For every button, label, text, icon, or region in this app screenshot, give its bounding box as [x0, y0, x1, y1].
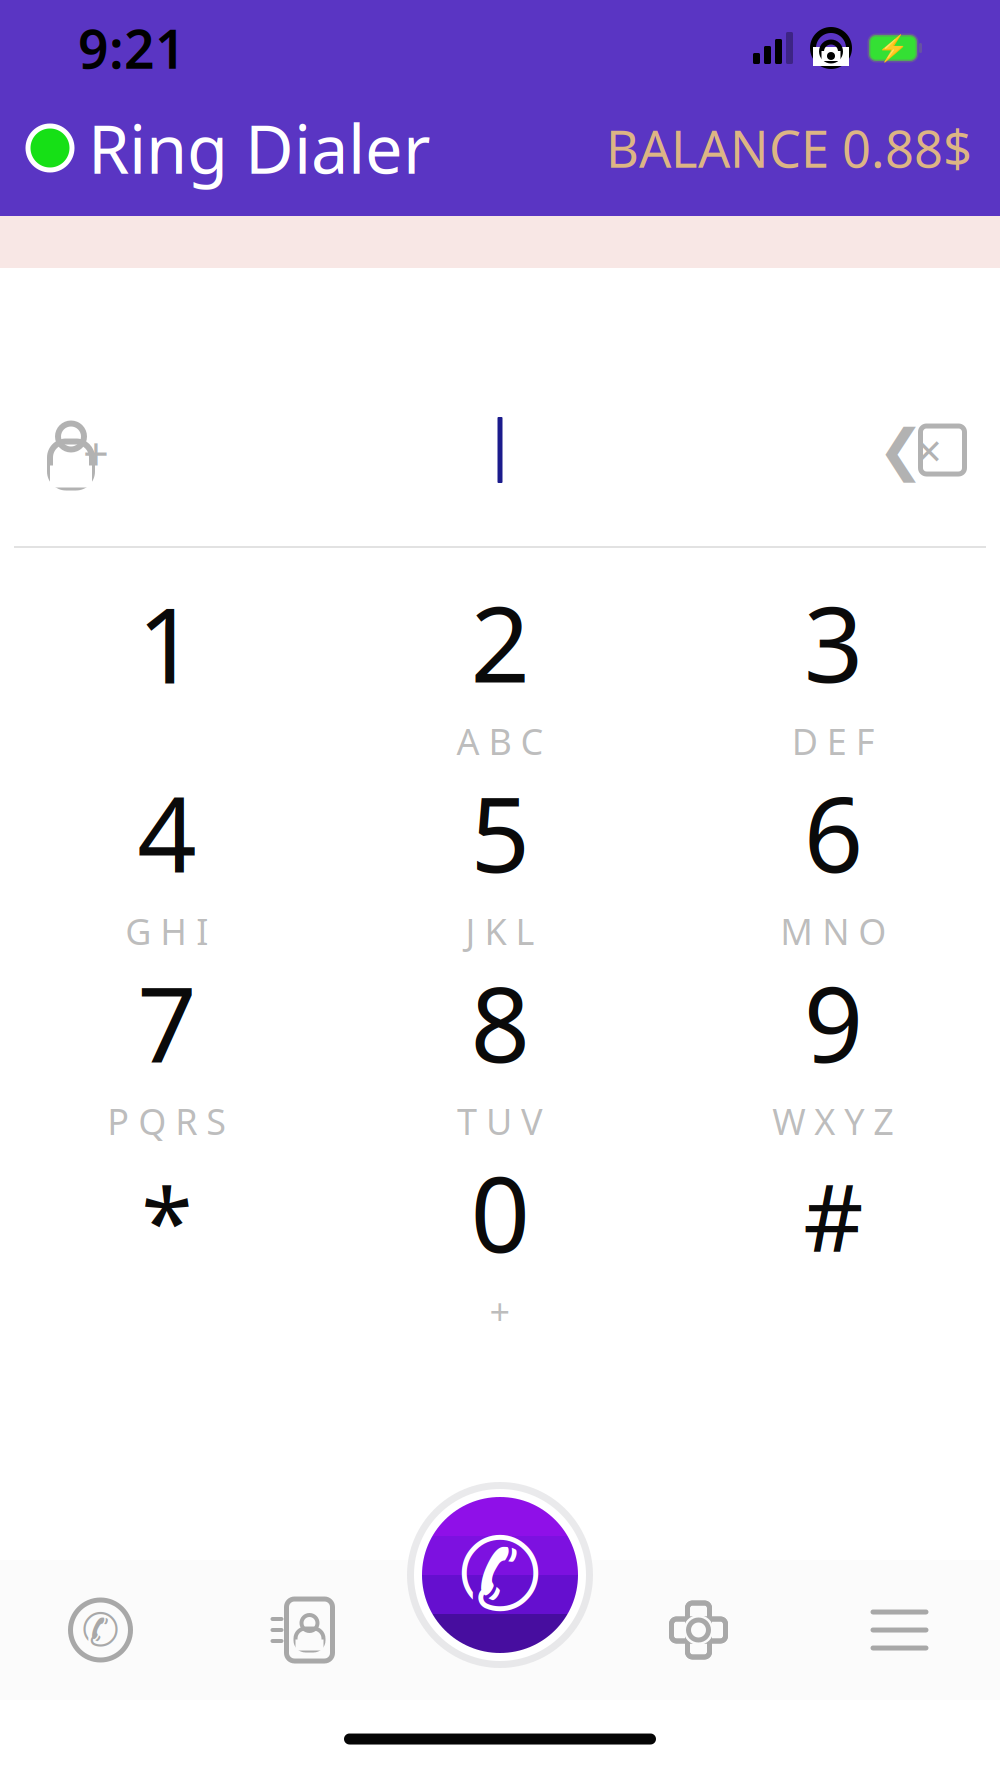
staticText: D E F: [792, 717, 875, 765]
staticText: *: [141, 1158, 192, 1282]
staticText: 3: [804, 573, 863, 711]
button[interactable]: 7: [0, 954, 333, 1144]
button[interactable]: Add contact: [14, 390, 144, 510]
staticText: ❮: [877, 418, 924, 482]
button[interactable]: 4: [0, 764, 333, 954]
staticText: 2: [470, 573, 529, 711]
button[interactable]: 0: [333, 1144, 667, 1334]
button[interactable]: BALANCE 0.88$: [606, 114, 972, 182]
staticText: +: [83, 423, 109, 483]
staticText: 9:21: [78, 13, 186, 83]
staticText: M N O: [780, 907, 886, 955]
staticText: 8: [470, 953, 529, 1091]
button[interactable]: 3: [667, 574, 1000, 764]
staticText: A B C: [456, 717, 543, 765]
staticText: 0: [470, 1143, 529, 1281]
button[interactable]: Menu: [799, 1560, 1000, 1700]
button[interactable]: #: [667, 1144, 1000, 1334]
button[interactable]: Recents: [0, 1560, 201, 1700]
staticText: 6: [804, 763, 863, 901]
staticText: ×: [916, 420, 942, 480]
staticText: ⚡: [877, 33, 909, 62]
button[interactable]: 2: [333, 574, 667, 764]
staticText: T U V: [457, 1097, 543, 1145]
staticText: #: [803, 1154, 863, 1278]
staticText: Ring Dialer: [88, 104, 431, 192]
staticText: J K L: [465, 907, 534, 955]
staticText: W X Y Z: [772, 1097, 894, 1145]
staticText: 9: [804, 953, 863, 1091]
staticText: ✆: [81, 1604, 119, 1656]
button[interactable]: 1: [0, 574, 333, 764]
staticText: 1: [137, 574, 196, 712]
staticText: ✆: [457, 1517, 542, 1632]
button[interactable]: Contacts: [201, 1560, 402, 1700]
button[interactable]: 5: [333, 764, 667, 954]
button[interactable]: 8: [333, 954, 667, 1144]
button[interactable]: Settings: [598, 1560, 799, 1700]
staticText: P Q R S: [107, 1097, 226, 1145]
button[interactable]: 6: [667, 764, 1000, 954]
button[interactable]: Delete: [856, 390, 986, 510]
button[interactable]: 9: [667, 954, 1000, 1144]
staticText: 4: [137, 763, 196, 901]
button[interactable]: Call: [405, 1480, 595, 1670]
staticText: 5: [470, 763, 529, 901]
staticText: G H I: [125, 907, 208, 955]
button[interactable]: *: [0, 1144, 333, 1334]
staticText: +: [489, 1287, 510, 1335]
staticText: BALANCE 0.88$: [606, 114, 972, 182]
staticText: 7: [137, 953, 196, 1091]
